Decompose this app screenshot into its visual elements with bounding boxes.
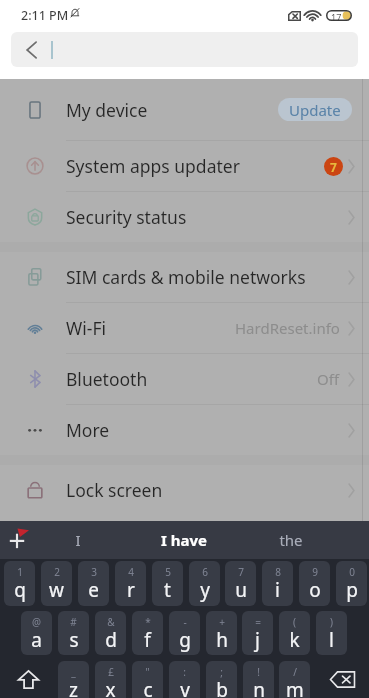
button[interactable]: 8	[262, 561, 293, 606]
button[interactable]: Update	[278, 98, 352, 121]
staticText: z	[69, 677, 78, 698]
staticText: 1	[17, 565, 23, 579]
staticText: :	[183, 665, 186, 679]
staticText: !	[257, 665, 260, 679]
staticText: /	[293, 665, 297, 679]
button[interactable]: @	[21, 611, 52, 655]
staticText: q	[14, 577, 26, 603]
staticText: x	[105, 677, 116, 698]
button[interactable]: 6	[189, 561, 220, 606]
staticText: System apps updater	[66, 154, 240, 178]
staticText: _	[71, 665, 76, 679]
button[interactable]: 0	[336, 561, 367, 606]
button[interactable]: 7	[225, 561, 256, 606]
button[interactable]: SIM cards & mobile networks	[0, 252, 369, 302]
button[interactable]: :	[169, 661, 200, 698]
button[interactable]: My device	[0, 79, 369, 140]
button[interactable]: (	[279, 611, 310, 655]
staticText: a	[31, 627, 42, 653]
button[interactable]: I	[26, 521, 130, 559]
button[interactable]: Wi-Fi	[0, 303, 369, 353]
button[interactable]: /	[279, 661, 310, 698]
staticText: b	[216, 677, 228, 698]
button[interactable]: Back	[11, 32, 358, 67]
staticText: j	[255, 627, 260, 653]
staticText: #	[70, 615, 77, 629]
button[interactable]: I have	[132, 521, 236, 559]
staticText: m	[286, 677, 304, 698]
staticText: s	[69, 627, 79, 653]
staticText: g	[179, 627, 191, 653]
staticText: 4	[128, 565, 134, 579]
staticText: k	[289, 627, 300, 653]
staticText: Off	[317, 369, 340, 389]
button[interactable]: "	[132, 661, 163, 698]
button[interactable]: 5	[152, 561, 183, 606]
staticText: )	[330, 615, 333, 629]
staticText: Wi-Fi	[66, 316, 107, 340]
button[interactable]: Backspace	[320, 661, 365, 698]
staticText: &	[107, 615, 115, 629]
staticText: @	[32, 615, 41, 629]
staticText: (	[293, 615, 296, 629]
button[interactable]: 1	[4, 561, 35, 606]
staticText: t	[164, 577, 171, 603]
button[interactable]: More	[0, 405, 369, 455]
staticText: -	[183, 615, 187, 629]
button[interactable]: +	[206, 611, 237, 655]
button[interactable]: 9	[299, 561, 330, 606]
button[interactable]: Security status	[0, 192, 369, 242]
staticText: £	[108, 665, 114, 679]
staticText: 17	[331, 11, 342, 23]
button[interactable]: System apps updater	[0, 141, 369, 191]
button[interactable]: _	[58, 661, 89, 698]
button[interactable]: Lock screen	[0, 465, 369, 515]
staticText: 2	[54, 565, 60, 579]
staticText: ;	[220, 665, 223, 679]
staticText: Lock screen	[66, 478, 163, 502]
staticText: n	[253, 677, 265, 698]
staticText: o	[309, 577, 321, 603]
button[interactable]: Shift	[4, 661, 52, 698]
staticText: u	[235, 577, 247, 603]
staticText: My device	[66, 98, 148, 122]
staticText: 0	[349, 565, 355, 579]
staticText: f	[144, 627, 151, 653]
staticText: 2:11 PM	[21, 7, 69, 24]
button[interactable]: 3	[78, 561, 109, 606]
button[interactable]: £	[95, 661, 126, 698]
staticText: h	[216, 627, 228, 653]
button[interactable]: =	[242, 611, 273, 655]
button[interactable]: ;	[206, 661, 237, 698]
button[interactable]: 2	[41, 561, 72, 606]
button[interactable]: *	[132, 611, 163, 655]
button[interactable]: &	[95, 611, 126, 655]
staticText: More	[66, 418, 110, 442]
staticText: I have	[161, 530, 207, 550]
staticText: i	[275, 577, 280, 603]
staticText: "	[145, 665, 150, 679]
staticText: w	[49, 577, 64, 603]
staticText: Update	[289, 100, 341, 120]
staticText: I	[75, 530, 81, 550]
staticText: =	[255, 615, 261, 629]
staticText: r	[127, 577, 135, 603]
staticText: v	[180, 677, 190, 698]
button[interactable]: 4	[115, 561, 146, 606]
other: Back	[26, 41, 37, 59]
staticText: l	[329, 627, 334, 653]
button[interactable]: !	[243, 661, 274, 698]
staticText: 7	[330, 159, 337, 175]
button[interactable]: #	[58, 611, 89, 655]
staticText: *	[145, 615, 151, 629]
staticText: 7	[238, 565, 244, 579]
staticText: Security status	[66, 205, 187, 229]
staticText: 6	[202, 565, 208, 579]
button[interactable]: -	[169, 611, 200, 655]
staticText: Bluetooth	[66, 367, 148, 391]
button[interactable]: the	[239, 521, 343, 559]
button[interactable]: Bluetooth	[0, 354, 369, 404]
button[interactable]: Keyboard menu	[5, 527, 29, 551]
button[interactable]: )	[316, 611, 347, 655]
staticText: e	[88, 577, 99, 603]
